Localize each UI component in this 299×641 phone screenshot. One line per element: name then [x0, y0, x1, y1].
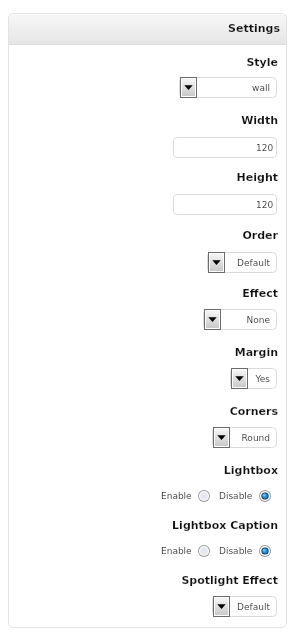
staticText: Margin — [8, 346, 278, 359]
staticText: Disable — [219, 546, 253, 556]
staticText: Order — [8, 229, 278, 242]
staticText: Enable — [161, 546, 192, 556]
staticText: wall — [252, 83, 270, 93]
button[interactable]: wall — [179, 77, 277, 98]
button[interactable]: 120 — [173, 194, 277, 215]
button[interactable]: Enable — [161, 545, 210, 557]
button[interactable]: Round — [212, 427, 277, 448]
button[interactable]: 120 — [173, 137, 277, 158]
staticText: Style — [8, 56, 278, 69]
staticText: Yes — [255, 374, 270, 384]
button[interactable]: Disable — [219, 545, 271, 557]
staticText: Default — [237, 602, 270, 612]
button[interactable]: Disable — [219, 490, 271, 502]
staticText: 120 — [256, 200, 274, 210]
staticText: Corners — [8, 405, 278, 418]
staticText: Lightbox — [8, 464, 278, 477]
button[interactable]: Default — [212, 596, 277, 617]
staticText: 120 — [256, 143, 274, 153]
staticText: Height — [8, 171, 278, 184]
button[interactable]: None — [203, 309, 277, 330]
button[interactable]: Enable — [161, 490, 210, 502]
staticText: Settings — [228, 22, 280, 35]
staticText: Default — [237, 258, 270, 268]
staticText: Width — [8, 114, 278, 127]
staticText: Spotlight Effect — [8, 574, 278, 587]
staticText: Disable — [219, 491, 253, 501]
staticText: Lightbox Caption — [8, 519, 278, 532]
staticText: Round — [241, 433, 270, 443]
button[interactable]: Default — [207, 252, 277, 273]
staticText: Enable — [161, 491, 192, 501]
staticText: Effect — [8, 287, 278, 300]
staticText: None — [246, 315, 270, 325]
button[interactable]: Yes — [230, 368, 277, 389]
